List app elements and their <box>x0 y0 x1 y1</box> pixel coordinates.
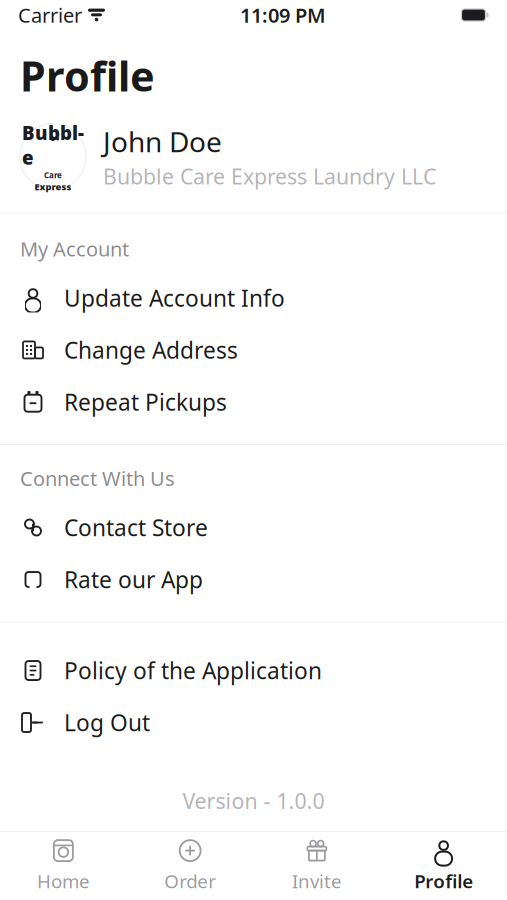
button[interactable]: Rate our App <box>0 553 507 605</box>
button[interactable]: Contact Store <box>0 501 507 553</box>
staticText: Update Account Info <box>64 283 285 313</box>
staticText: Invite <box>292 869 342 893</box>
staticText: Bubble <box>22 120 84 170</box>
staticText: Repeat Pickups <box>64 387 227 417</box>
staticText: Connect With Us <box>20 465 175 492</box>
button[interactable]: Invite <box>253 832 380 900</box>
staticText: Rate our App <box>64 564 203 595</box>
staticText: John Doe <box>103 123 222 160</box>
button[interactable]: Repeat Pickups <box>0 376 507 428</box>
button[interactable]: Update Account Info <box>0 272 507 324</box>
staticText: Order <box>164 869 216 893</box>
staticText: Bubble Care Express Laundry LLC <box>103 162 436 190</box>
staticText: Profile <box>20 48 155 103</box>
button[interactable]: Order <box>127 832 254 900</box>
staticText: My Account <box>20 235 129 262</box>
button[interactable]: Profile <box>380 832 507 900</box>
button[interactable]: Policy of the Application <box>0 644 507 696</box>
staticText: Express <box>34 180 71 193</box>
staticText: Home <box>37 869 90 893</box>
staticText: Log Out <box>64 707 150 738</box>
staticText: Change Address <box>64 335 238 365</box>
staticText: Care <box>44 170 62 180</box>
staticText: Contact Store <box>64 512 208 543</box>
staticText: 11:09 PM <box>240 2 326 28</box>
staticText: Policy of the Application <box>64 655 322 686</box>
button[interactable]: Home <box>0 832 127 900</box>
button[interactable]: Log Out <box>0 696 507 748</box>
staticText: Profile <box>414 869 473 893</box>
staticText: Version - 1.0.0 <box>182 787 324 815</box>
staticText: Carrier <box>18 2 82 28</box>
button[interactable]: Change Address <box>0 324 507 376</box>
